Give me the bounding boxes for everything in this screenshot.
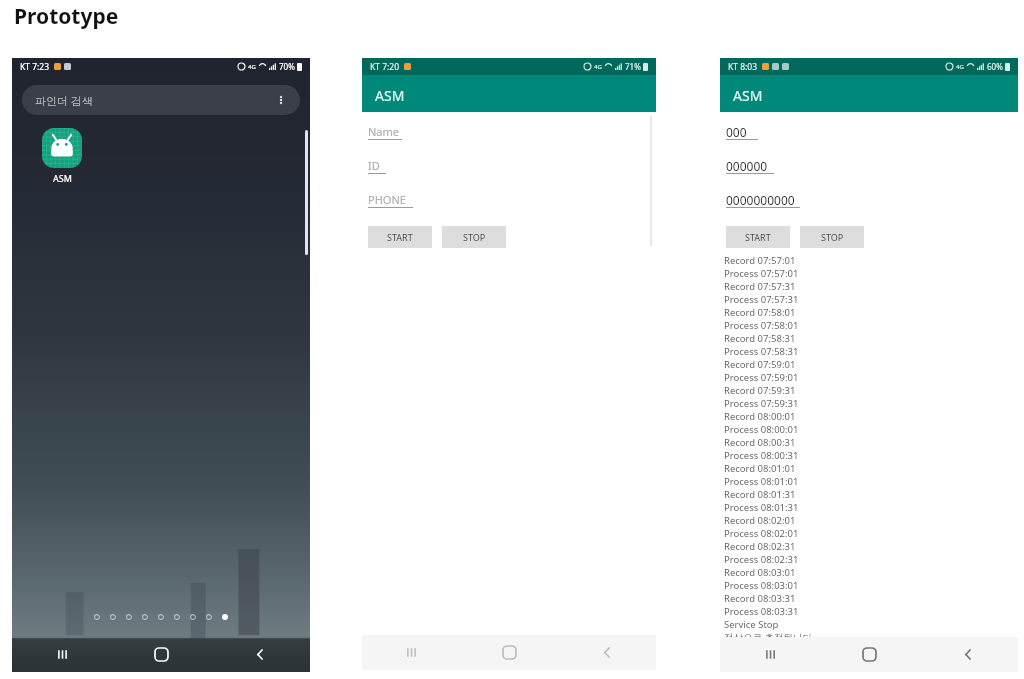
staticText: 4G [594,63,602,71]
staticText: 60% [987,61,1003,72]
staticText: 000 [726,124,747,140]
staticText: 0000000000 [726,192,795,208]
button[interactable]: Recents [362,635,460,670]
button[interactable]: Back [558,635,656,670]
button[interactable]: Recents [720,637,820,672]
staticText: Name [368,124,400,139]
staticText: Process 08:02:01 [724,527,799,540]
staticText: START [745,231,771,243]
staticText: 정상으로 추정됩니다. [724,631,815,644]
staticText: ASM [733,86,763,105]
staticText: KT 7:23 [20,61,50,73]
button[interactable]: 파인더 검색 [22,85,300,115]
staticText: 파인더 검색 [35,93,93,108]
staticText: 70% [279,61,295,72]
staticText: Record 07:57:31 [724,280,796,293]
button[interactable]: Back [919,637,1018,672]
button[interactable]: Home [112,637,211,672]
staticText: Record 08:01:31 [724,488,796,501]
button[interactable]: Back [211,637,310,672]
staticText: KT 7:20 [370,61,400,73]
staticText: ASM [53,172,72,184]
staticText: Prototype [14,2,119,31]
staticText: Record 08:02:31 [724,540,796,553]
button[interactable]: START [368,226,432,248]
staticText: 71% [625,61,641,72]
staticText: ASM [375,86,405,105]
staticText: Record 08:03:31 [724,592,796,605]
staticText: Process 07:59:01 [724,371,799,384]
staticText: STOP [463,231,486,243]
button[interactable]: STOP [442,226,506,248]
staticText: ID [368,158,380,173]
staticText: Record 08:00:01 [724,410,796,423]
staticText: 4G [248,63,256,71]
button[interactable]: Recents [12,637,112,672]
staticText: Process 08:00:01 [724,423,799,436]
staticText: Process 07:58:31 [724,345,799,358]
staticText: Record 07:57:01 [724,254,796,267]
staticText: STOP [821,231,844,243]
staticText: PHONE [368,192,406,207]
staticText: Record 07:58:31 [724,332,796,345]
staticText: Process 08:03:01 [724,579,799,592]
button[interactable]: START [726,226,790,248]
staticText: Process 08:00:31 [724,449,799,462]
staticText: Process 08:02:31 [724,553,799,566]
staticText: Process 07:59:31 [724,397,799,410]
staticText: Process 08:03:31 [724,605,799,618]
staticText: Process 08:01:01 [724,475,799,488]
staticText: Process 07:58:01 [724,319,799,332]
button[interactable]: Home [820,637,919,672]
button[interactable]: Home [460,635,558,670]
staticText: KT 8:03 [728,61,758,73]
staticText: Record 08:00:31 [724,436,796,449]
staticText: Process 07:57:31 [724,293,799,306]
button[interactable]: STOP [800,226,864,248]
staticText: Process 07:57:01 [724,267,799,280]
staticText: Record 07:58:01 [724,306,796,319]
staticText: 4G [956,63,964,71]
staticText: Process 08:01:31 [724,501,799,514]
staticText: Record 07:59:01 [724,358,796,371]
staticText: Service Stop [724,618,779,631]
staticText: 000000 [726,158,768,174]
staticText: Record 08:03:01 [724,566,796,579]
staticText: Record 07:59:31 [724,384,796,397]
staticText: START [387,231,413,243]
button[interactable]: ASM app [34,128,90,184]
staticText: Record 08:02:01 [724,514,796,527]
staticText: Record 08:01:01 [724,462,796,475]
